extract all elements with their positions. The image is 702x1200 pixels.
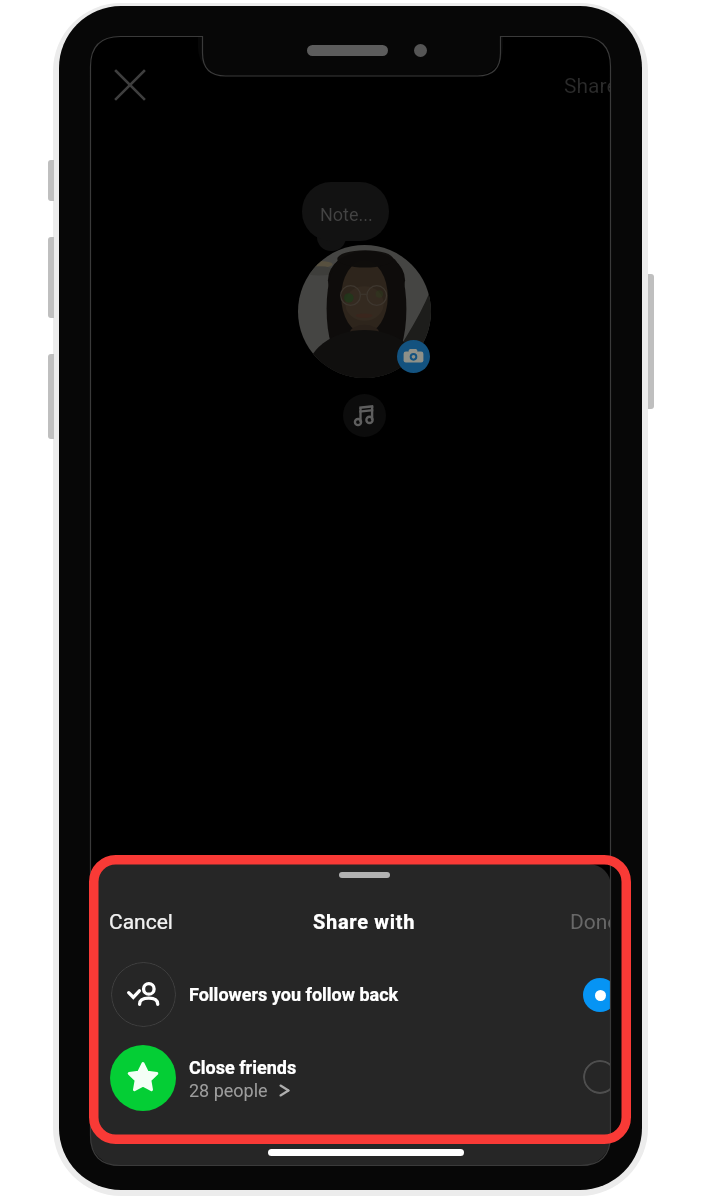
- staticText: Note...: [320, 204, 373, 225]
- button[interactable]: Cancel: [109, 910, 173, 935]
- button[interactable]: Share: [564, 74, 611, 99]
- staticText: Share: [564, 74, 611, 99]
- button[interactable]: Profile photo: [298, 245, 431, 378]
- button[interactable]: Select close friends: [583, 1060, 611, 1094]
- staticText: Close friends: [189, 1057, 297, 1078]
- button[interactable]: Done: [570, 910, 611, 935]
- button[interactable]: Followers you follow back: [90, 962, 611, 1028]
- button[interactable]: Selected: [583, 978, 611, 1012]
- button[interactable]: Change profile photo: [397, 340, 430, 373]
- button[interactable]: Add music: [343, 394, 386, 437]
- button[interactable]: Close: [106, 61, 154, 109]
- staticText: Cancel: [109, 910, 173, 935]
- button[interactable]: Note...: [302, 182, 389, 241]
- staticText: Done: [570, 910, 611, 935]
- staticText: Share with: [313, 910, 416, 933]
- button[interactable]: Close friends: [90, 1045, 611, 1111]
- staticText: 28 people: [189, 1080, 268, 1101]
- staticText: Followers you follow back: [189, 984, 399, 1005]
